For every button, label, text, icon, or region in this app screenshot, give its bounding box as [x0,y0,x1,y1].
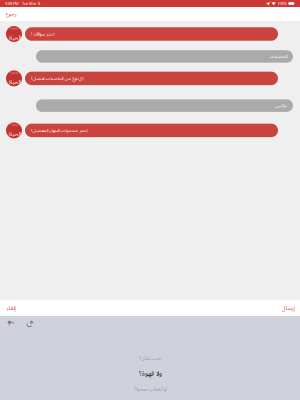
staticText: إلغاء [6,302,15,314]
staticText: الحاسبات [269,51,287,61]
staticText: جمعية [9,121,18,128]
staticText: 9:08 PM Tue Mar 8 [5,1,40,6]
button[interactable]: اختر مشتريات الجهاز المفضل؟ [25,124,278,137]
button[interactable]: Redo [24,318,35,329]
staticText: الحياة [8,32,20,43]
staticText: اي نوع من الحاسبات تفضل؟ [30,73,83,83]
staticText: اختر سؤالك ؟ [30,29,54,39]
button[interactable]: Undo [6,318,17,329]
staticText: رجوع [5,8,16,20]
button[interactable]: إرسال [279,300,296,316]
staticText: او أعشاب صحية؟ [133,384,166,394]
button[interactable]: إلغاء [4,300,17,316]
button[interactable]: اي نوع من الحاسبات تفضل؟ [25,72,278,85]
staticText: مكتبي [274,101,287,111]
button[interactable]: رجوع [3,6,18,22]
staticText: جمعية [9,24,18,32]
staticText: الحياة [8,128,20,140]
button[interactable]: اختر سؤالك ؟ [25,27,278,41]
staticText: إرسال [281,302,294,314]
staticText: 100% [278,1,287,6]
staticText: جمعية [9,69,18,76]
staticText: تحب شاي؟ [138,353,161,364]
staticText: الحياة [8,76,20,88]
staticText: ولا قهوة؟ [138,367,161,381]
staticText: اختر مشتريات الجهاز المفضل؟ [30,125,87,135]
